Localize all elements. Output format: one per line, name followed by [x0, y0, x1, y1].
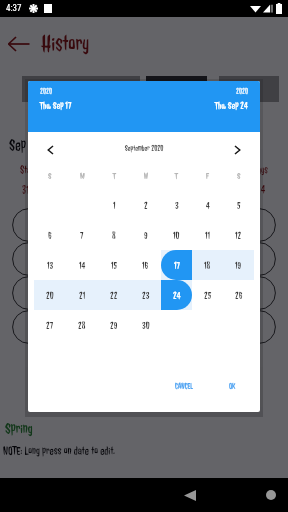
button[interactable]: 27	[34, 310, 66, 340]
staticText: 16	[142, 259, 149, 271]
staticText: 10	[173, 229, 180, 241]
staticText: S	[237, 170, 241, 181]
button[interactable]: 23	[130, 280, 161, 310]
staticText: 17	[174, 259, 180, 271]
staticText: 19	[235, 259, 242, 271]
staticText: 11	[205, 229, 211, 241]
button[interactable]: 6	[34, 220, 66, 250]
button[interactable]: 16	[130, 250, 161, 280]
staticText: History	[41, 30, 90, 58]
button[interactable]: 20	[34, 280, 66, 310]
button[interactable]: 29	[98, 310, 130, 340]
staticText: 4	[47, 321, 52, 334]
button[interactable]: 4	[192, 190, 223, 220]
button[interactable]: 15	[98, 250, 130, 280]
staticText: 2	[236, 253, 241, 266]
staticText: 30	[142, 319, 150, 331]
staticText: M	[80, 170, 85, 181]
button[interactable]: 10	[161, 220, 192, 250]
button[interactable]: 8	[98, 220, 130, 250]
button[interactable]: 14	[66, 250, 98, 280]
button[interactable]	[219, 76, 279, 102]
staticText: 6	[48, 229, 52, 241]
staticText: 23	[142, 289, 150, 301]
button[interactable]: CANCEL	[167, 376, 201, 396]
button[interactable]: 3	[0, 276, 288, 310]
button[interactable]: 4	[0, 310, 288, 344]
staticText: 31	[22, 183, 30, 196]
button[interactable]: 5	[223, 190, 254, 220]
staticText: 27	[46, 319, 54, 331]
staticText: Thu, Sep 24	[215, 99, 248, 111]
button[interactable]: 12	[223, 220, 254, 250]
button[interactable]: 17	[161, 250, 192, 280]
staticText: 4	[206, 199, 210, 211]
staticText: 18	[204, 259, 211, 271]
staticText: 24	[173, 289, 181, 301]
button[interactable]: 1	[98, 190, 130, 220]
staticText: 22	[110, 289, 118, 301]
button[interactable]: Next month	[226, 138, 249, 161]
button[interactable]: Recent apps	[207, 478, 288, 512]
staticText: 15	[111, 259, 118, 271]
staticText: 7	[80, 229, 84, 241]
staticText: W	[144, 170, 148, 181]
staticText: 29	[110, 319, 118, 331]
staticText: OK	[229, 381, 236, 391]
staticText: NOTE: Long press on date to edit.	[3, 443, 115, 458]
staticText: 1	[238, 219, 241, 232]
staticText: 8	[112, 229, 116, 241]
button[interactable]: 19	[223, 250, 254, 280]
button[interactable]: 1	[0, 208, 288, 242]
button[interactable]: 9	[130, 220, 161, 250]
button[interactable]: 11	[192, 220, 223, 250]
button[interactable]: 26	[223, 280, 254, 310]
staticText: 3	[175, 199, 179, 211]
staticText: Start	[20, 163, 37, 176]
button[interactable]: 30	[130, 310, 161, 340]
staticText: 26	[235, 289, 243, 301]
button[interactable]: Previous month	[39, 138, 62, 161]
button[interactable]: 2	[0, 242, 288, 276]
button[interactable]: 25	[192, 280, 223, 310]
button[interactable]: 18	[192, 250, 223, 280]
staticText: T	[113, 170, 116, 181]
staticText: F	[206, 170, 209, 181]
staticText: 2020	[40, 86, 52, 96]
staticText: T	[175, 170, 178, 181]
staticText: 1	[113, 199, 116, 211]
staticText: 21	[79, 289, 86, 301]
button[interactable]: OK	[221, 376, 244, 396]
staticText: S	[48, 170, 52, 181]
staticText: 12	[235, 229, 242, 241]
staticText: 2	[47, 253, 52, 266]
staticText: 4	[261, 183, 266, 196]
button[interactable]: Back	[3, 28, 35, 60]
staticText: Days	[253, 163, 268, 176]
button[interactable]: 13	[34, 250, 66, 280]
button[interactable]	[22, 76, 140, 102]
button[interactable]: 2	[130, 190, 161, 220]
staticText: 25	[204, 289, 212, 301]
staticText: September 2020	[62, 143, 226, 153]
button[interactable]: Back	[46, 478, 288, 512]
button[interactable]	[146, 76, 207, 102]
button[interactable]: 21	[66, 280, 98, 310]
button[interactable]: 24	[161, 280, 192, 310]
button[interactable]: 3	[161, 190, 192, 220]
staticText: 14	[79, 259, 86, 271]
staticText: 2020	[236, 86, 248, 96]
staticText: Spring	[5, 420, 33, 438]
button[interactable]: Home	[127, 478, 288, 512]
button[interactable]: 7	[66, 220, 98, 250]
button[interactable]: 22	[98, 280, 130, 310]
staticText: 5	[237, 199, 241, 211]
button[interactable]: 28	[66, 310, 98, 340]
